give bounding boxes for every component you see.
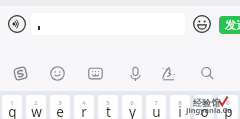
- button[interactable]: 4: [74, 95, 94, 119]
- button[interactable]: Keyboard: [81, 59, 109, 87]
- staticText: 2: [34, 99, 38, 107]
- button[interactable]: 9: [194, 95, 214, 119]
- button[interactable]: 1: [2, 95, 22, 119]
- staticText: y: [129, 103, 136, 119]
- button[interactable]: 0: [218, 95, 238, 119]
- button[interactable]: Voice input: [121, 59, 149, 87]
- staticText: 6: [130, 99, 134, 107]
- staticText: 7: [154, 99, 158, 107]
- staticText: w: [31, 103, 42, 119]
- staticText: 经验馆: [193, 97, 220, 108]
- button[interactable]: 7: [146, 95, 166, 119]
- button[interactable]: Voice input: [7, 14, 27, 34]
- button[interactable]: 发送: [219, 16, 240, 34]
- staticText: 4: [82, 99, 86, 107]
- button[interactable]: 3: [50, 95, 70, 119]
- button[interactable]: [31, 13, 185, 35]
- staticText: 9: [202, 99, 206, 107]
- staticText: q: [8, 103, 17, 119]
- button[interactable]: 2: [26, 95, 46, 119]
- staticText: o: [200, 103, 209, 119]
- staticText: e: [56, 103, 64, 119]
- staticText: p: [224, 103, 233, 119]
- staticText: 8: [178, 99, 182, 107]
- staticText: Jingyanla.Com: [186, 105, 238, 119]
- staticText: r: [81, 103, 87, 119]
- button[interactable]: Emoji: [192, 14, 212, 34]
- staticText: u: [152, 103, 161, 119]
- staticText: 1: [10, 99, 14, 107]
- staticText: 5: [106, 99, 110, 107]
- staticText: i: [178, 103, 182, 119]
- staticText: 3: [58, 99, 62, 107]
- staticText: t: [106, 103, 111, 119]
- button[interactable]: Sogou input: [6, 59, 34, 87]
- button[interactable]: Emoticons: [43, 59, 71, 87]
- button[interactable]: Handwriting: [154, 59, 182, 87]
- staticText: 发送: [225, 18, 240, 32]
- button[interactable]: 6: [122, 95, 142, 119]
- staticText: 0: [226, 99, 230, 107]
- button[interactable]: Search: [193, 59, 221, 87]
- button[interactable]: 5: [98, 95, 118, 119]
- button[interactable]: 8: [170, 95, 190, 119]
